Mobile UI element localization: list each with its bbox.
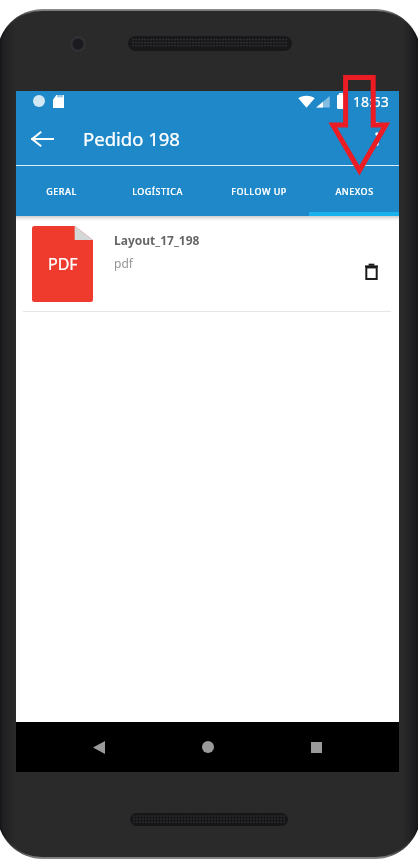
button[interactable]: GERAL bbox=[16, 166, 106, 216]
staticText: GERAL bbox=[46, 185, 77, 197]
button[interactable]: Home bbox=[185, 724, 231, 770]
button[interactable]: Delete bbox=[349, 249, 393, 293]
button[interactable]: PDF bbox=[16, 216, 399, 312]
staticText: Pedido 198 bbox=[83, 126, 180, 151]
staticText: 18:53 bbox=[353, 92, 389, 111]
button[interactable]: LOGÍSTICA bbox=[106, 166, 208, 216]
button[interactable]: ANEXOS bbox=[309, 166, 399, 216]
button[interactable]: Recents bbox=[293, 724, 339, 770]
staticText: LOGÍSTICA bbox=[132, 185, 183, 197]
staticText: FOLLOW UP bbox=[231, 185, 287, 197]
button[interactable]: FOLLOW UP bbox=[208, 166, 309, 216]
staticText: Layout_17_198 bbox=[114, 232, 200, 248]
button[interactable]: Back bbox=[16, 111, 68, 166]
staticText: ANEXOS bbox=[335, 185, 374, 197]
button[interactable]: Back bbox=[76, 724, 122, 770]
button[interactable]: More options bbox=[355, 111, 399, 166]
staticText: pdf bbox=[114, 255, 133, 271]
staticText: PDF bbox=[48, 253, 78, 275]
